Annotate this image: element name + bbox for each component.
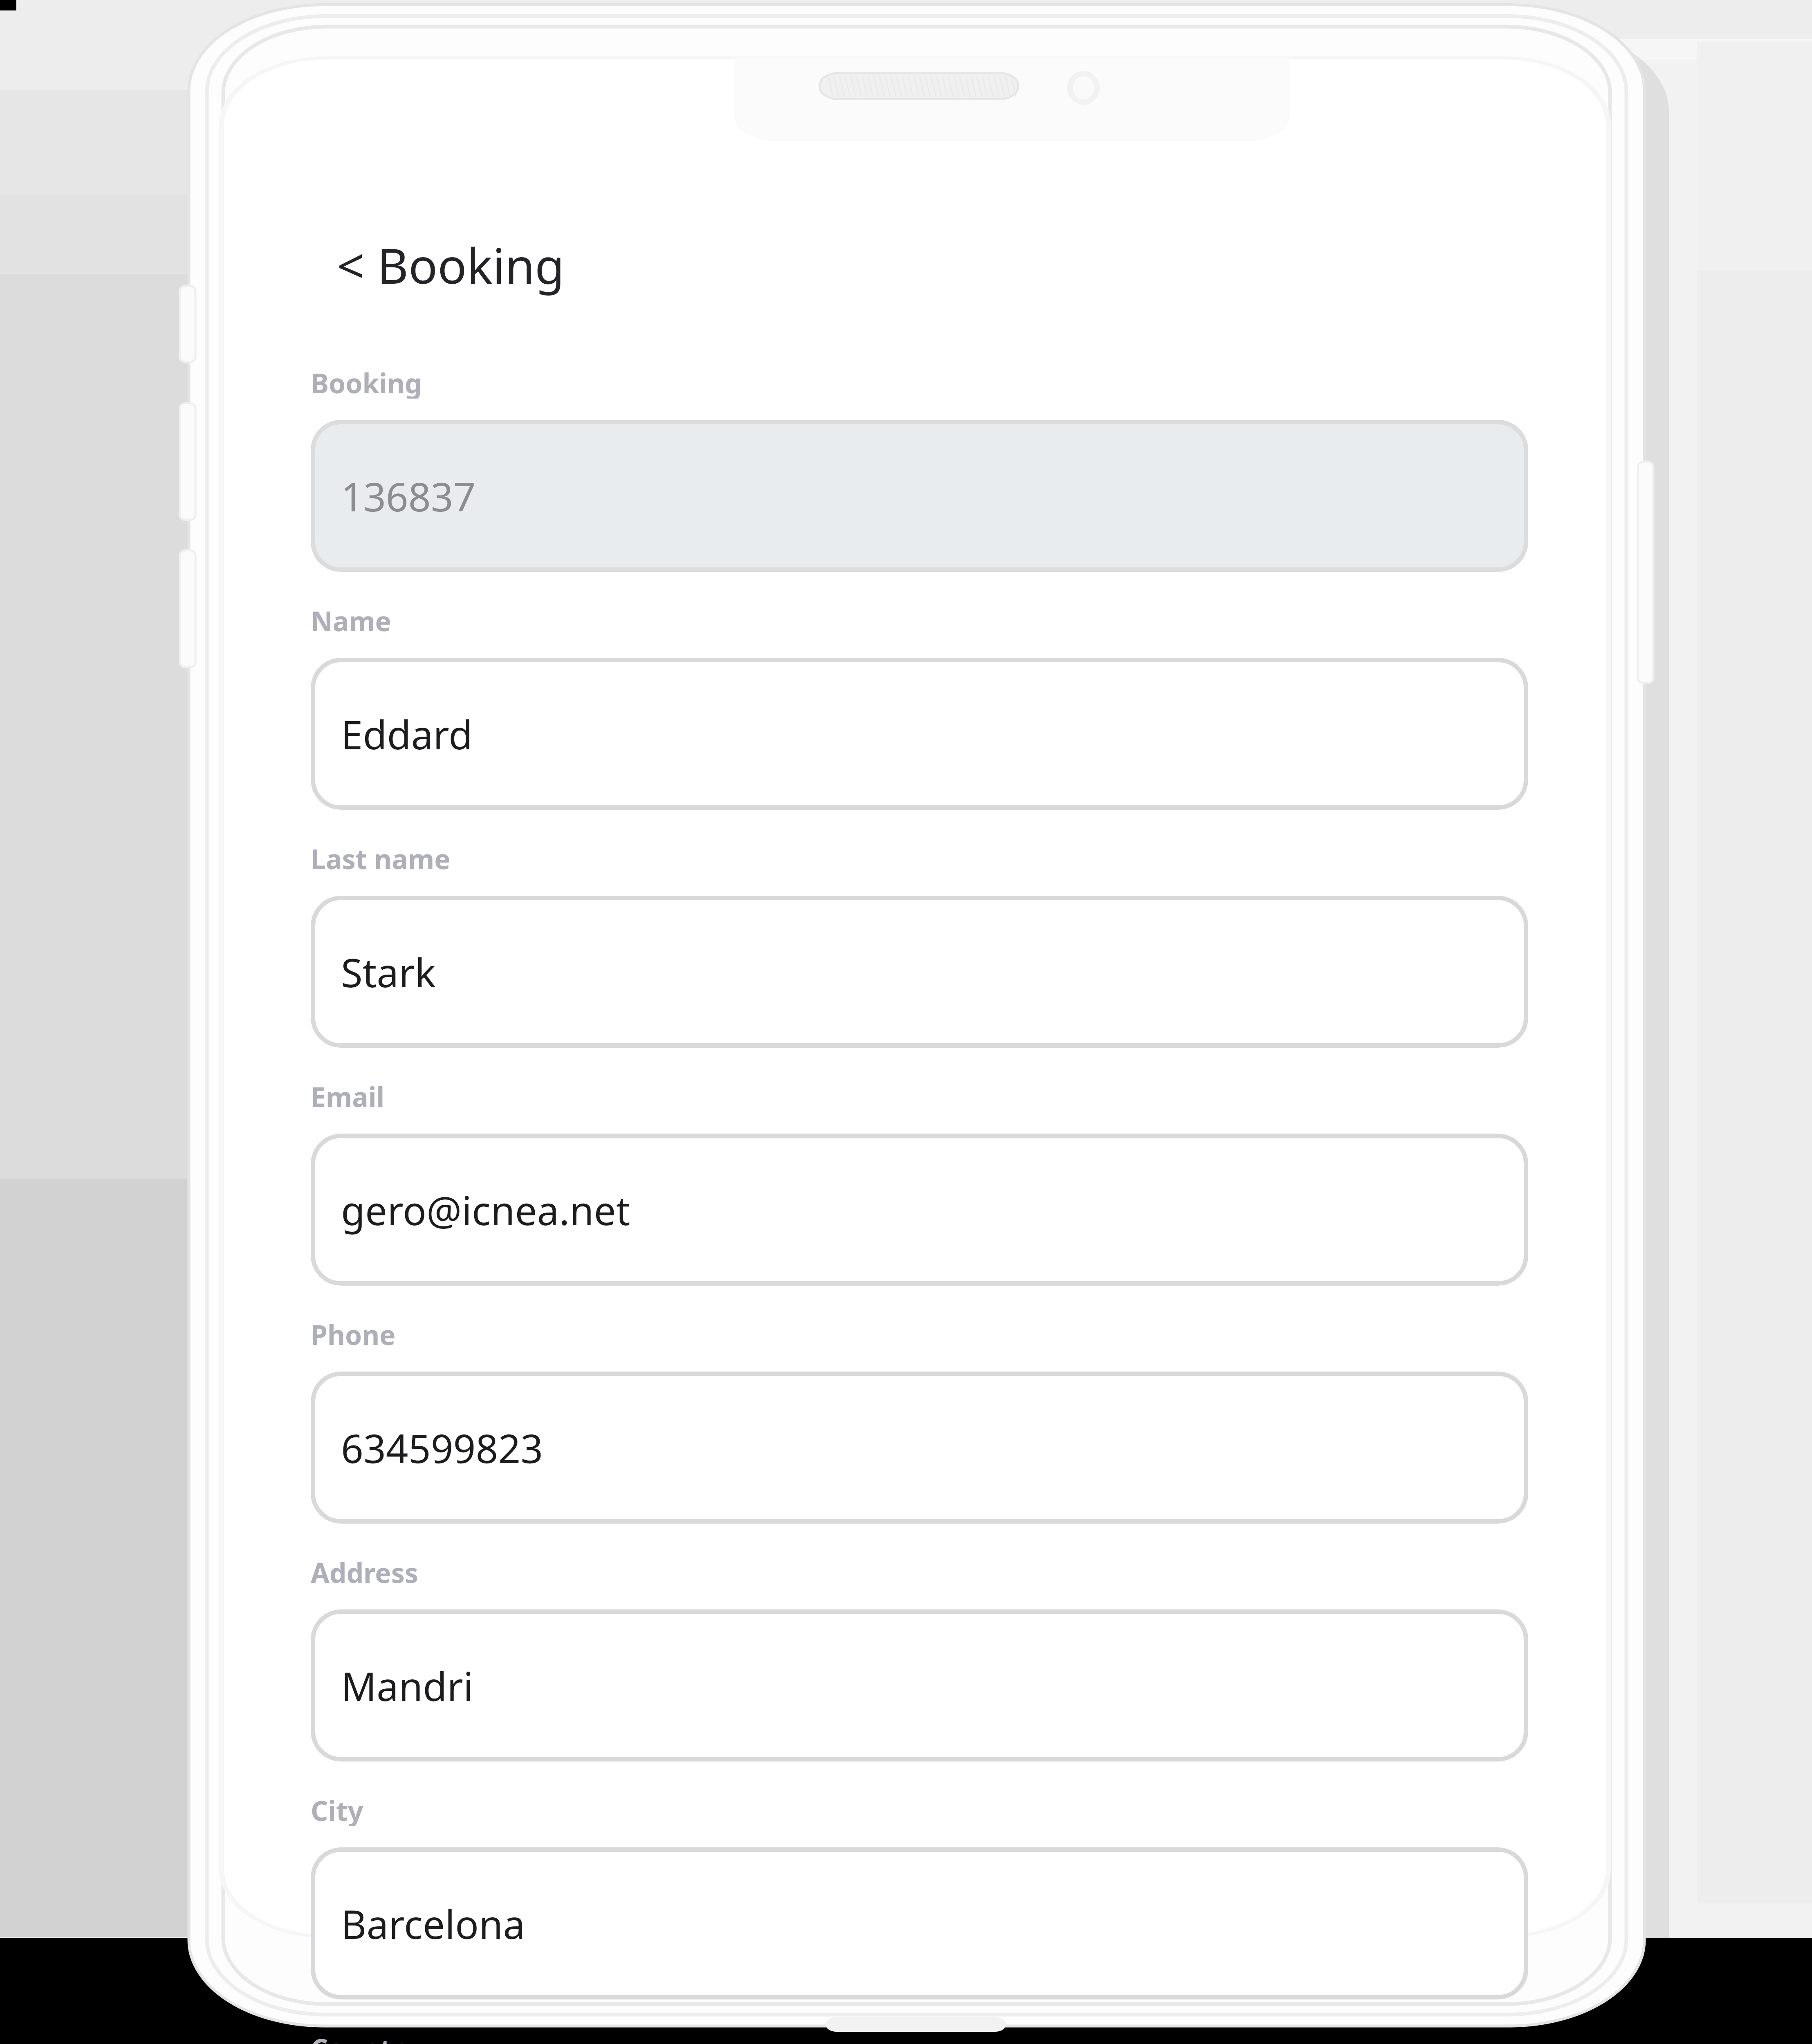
staticText: Address (311, 1554, 418, 1588)
staticText: Country (311, 2030, 419, 2044)
staticText: Barcelona (341, 1897, 525, 1950)
staticText: Eddard (341, 707, 473, 761)
staticText: Phone (311, 1316, 396, 1350)
staticText: Mandri (341, 1659, 473, 1712)
staticText: Email (311, 1078, 385, 1112)
button[interactable]: Barcelona (311, 1847, 1528, 1999)
button[interactable]: Stark (311, 896, 1528, 1048)
button[interactable]: Mandri (311, 1609, 1528, 1762)
button[interactable]: Eddard (311, 658, 1528, 810)
staticText: City (311, 1792, 363, 1826)
staticText: Booking (311, 364, 422, 399)
button[interactable]: 136837 (311, 420, 1528, 572)
staticText: Last name (311, 840, 451, 874)
staticText: Stark (341, 945, 436, 999)
button[interactable]: gero@icnea.net (311, 1134, 1528, 1286)
staticText: gero@icnea.net (341, 1183, 630, 1237)
staticText: Name (311, 602, 391, 637)
staticText: 136837 (341, 469, 476, 523)
staticText: < Booking (337, 232, 565, 298)
button[interactable]: Back to Booking (332, 228, 570, 302)
staticText: 634599823 (341, 1421, 543, 1475)
button[interactable]: 634599823 (311, 1372, 1528, 1524)
